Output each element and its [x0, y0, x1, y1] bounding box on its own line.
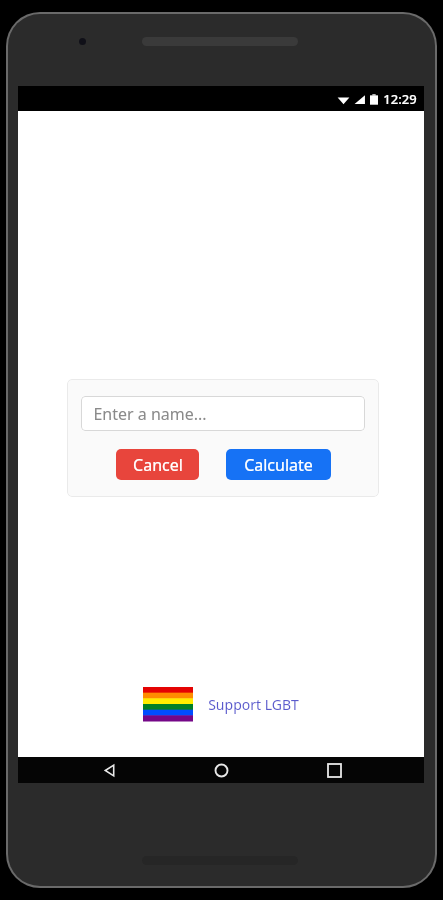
other: Rainbow pride flag: [143, 687, 193, 721]
staticText: Enter a name...: [93, 403, 207, 425]
button[interactable]: Rainbow pride flag: [143, 687, 299, 721]
button[interactable]: Cancel: [116, 449, 199, 480]
staticText: 12:29: [383, 90, 417, 108]
button[interactable]: Calculate: [226, 449, 331, 480]
button[interactable]: Enter a name...: [81, 396, 365, 431]
staticText: Calculate: [244, 454, 313, 476]
staticText: Support LGBT: [208, 695, 299, 714]
button[interactable]: Recent apps: [312, 757, 356, 783]
staticText: Cancel: [133, 454, 183, 476]
button[interactable]: Home: [199, 757, 243, 783]
button[interactable]: Back: [87, 757, 131, 783]
